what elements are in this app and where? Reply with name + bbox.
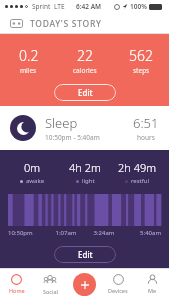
- staticText: Me: [148, 287, 157, 294]
- staticText: 4h 2m: [69, 160, 101, 175]
- staticText: Edit: [78, 249, 93, 260]
- staticText: Sleep: [45, 114, 78, 132]
- staticText: hours: [137, 133, 155, 142]
- button[interactable]: Home: [0, 268, 33, 300]
- staticText: 2h 49m: [118, 160, 157, 175]
- staticText: Devices: [108, 287, 128, 294]
- button[interactable]: Social: [33, 268, 67, 300]
- staticText: 0m: [24, 160, 41, 175]
- staticText: Sprint: [32, 2, 51, 11]
- staticText: 6:51: [133, 114, 159, 132]
- staticText: 0.2: [19, 46, 39, 65]
- staticText: 100%: [130, 2, 147, 11]
- staticText: 562: [129, 46, 153, 65]
- staticText: awake: [26, 177, 45, 185]
- button[interactable]: Add: [73, 273, 96, 296]
- staticText: Edit: [78, 87, 93, 98]
- staticText: calories: [73, 66, 97, 75]
- staticText: 22: [77, 46, 93, 65]
- staticText: 6:42 AM: [76, 2, 102, 11]
- staticText: restful: [131, 177, 150, 185]
- staticText: 10:50pm: [8, 229, 47, 237]
- button[interactable]: Edit: [54, 84, 116, 101]
- staticText: Social: [43, 288, 58, 295]
- staticText: 1:07am: [47, 229, 85, 237]
- staticText: light: [82, 177, 95, 185]
- button[interactable]: Story icon: [10, 19, 23, 28]
- button[interactable]: Devices: [101, 268, 135, 300]
- staticText: 3:24am: [85, 229, 123, 237]
- staticText: miles: [20, 66, 37, 75]
- staticText: 10:50pm - 5:40am: [45, 133, 100, 142]
- staticText: Home: [9, 287, 25, 294]
- staticText: LTE: [54, 2, 65, 11]
- staticText: steps: [133, 66, 150, 75]
- staticText: TODAY'S STORY: [30, 18, 102, 30]
- button[interactable]: Edit: [54, 246, 116, 263]
- staticText: 5:40am: [123, 229, 161, 237]
- button[interactable]: Me: [135, 268, 169, 300]
